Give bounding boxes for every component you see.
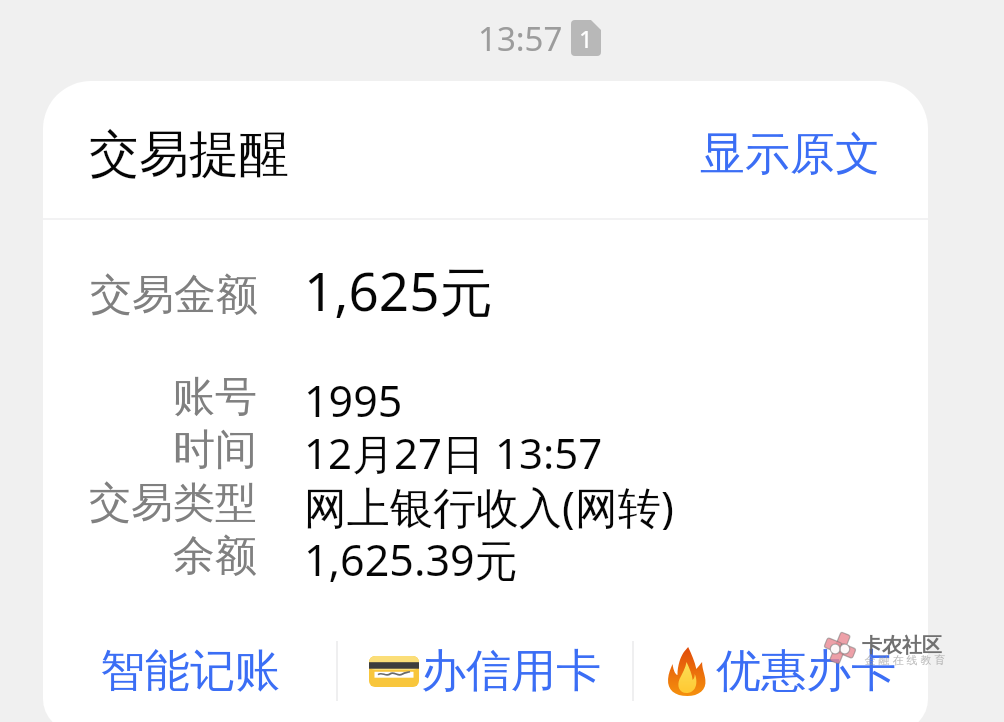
other: 1 unread notification (571, 20, 601, 56)
staticText: 金融在线教育 (863, 653, 947, 667)
staticText: 交易提醒 (89, 123, 289, 186)
button[interactable]: 办信用卡 (338, 621, 632, 721)
staticText: 1 (579, 22, 593, 55)
staticText: 智能记账 (100, 643, 280, 700)
button[interactable]: 优惠办卡 (634, 621, 928, 721)
staticText: 交易类型 (89, 477, 257, 530)
staticText: 13:57 (478, 16, 563, 61)
staticText: 显示原文 (700, 126, 880, 183)
staticText: 余额 (173, 530, 257, 583)
staticText: 优惠办卡 (716, 643, 896, 700)
staticText: 12月27日 13:57 (304, 424, 603, 477)
button[interactable]: 显示原文 (683, 114, 897, 195)
staticText: 1,625.39元 (304, 530, 518, 583)
staticText: 卡农社区 (862, 633, 942, 658)
button[interactable]: 交易提醒 (43, 81, 928, 722)
button[interactable]: 智能记账 (43, 621, 336, 721)
staticText: 办信用卡 (421, 643, 601, 700)
staticText: 网上银行收入(网转) (304, 477, 674, 530)
staticText: 时间 (173, 424, 257, 477)
staticText: 账号 (173, 371, 257, 424)
staticText: 交易金额 (90, 269, 258, 322)
staticText: 1995 (304, 371, 403, 424)
staticText: 1,625元 (304, 254, 493, 326)
